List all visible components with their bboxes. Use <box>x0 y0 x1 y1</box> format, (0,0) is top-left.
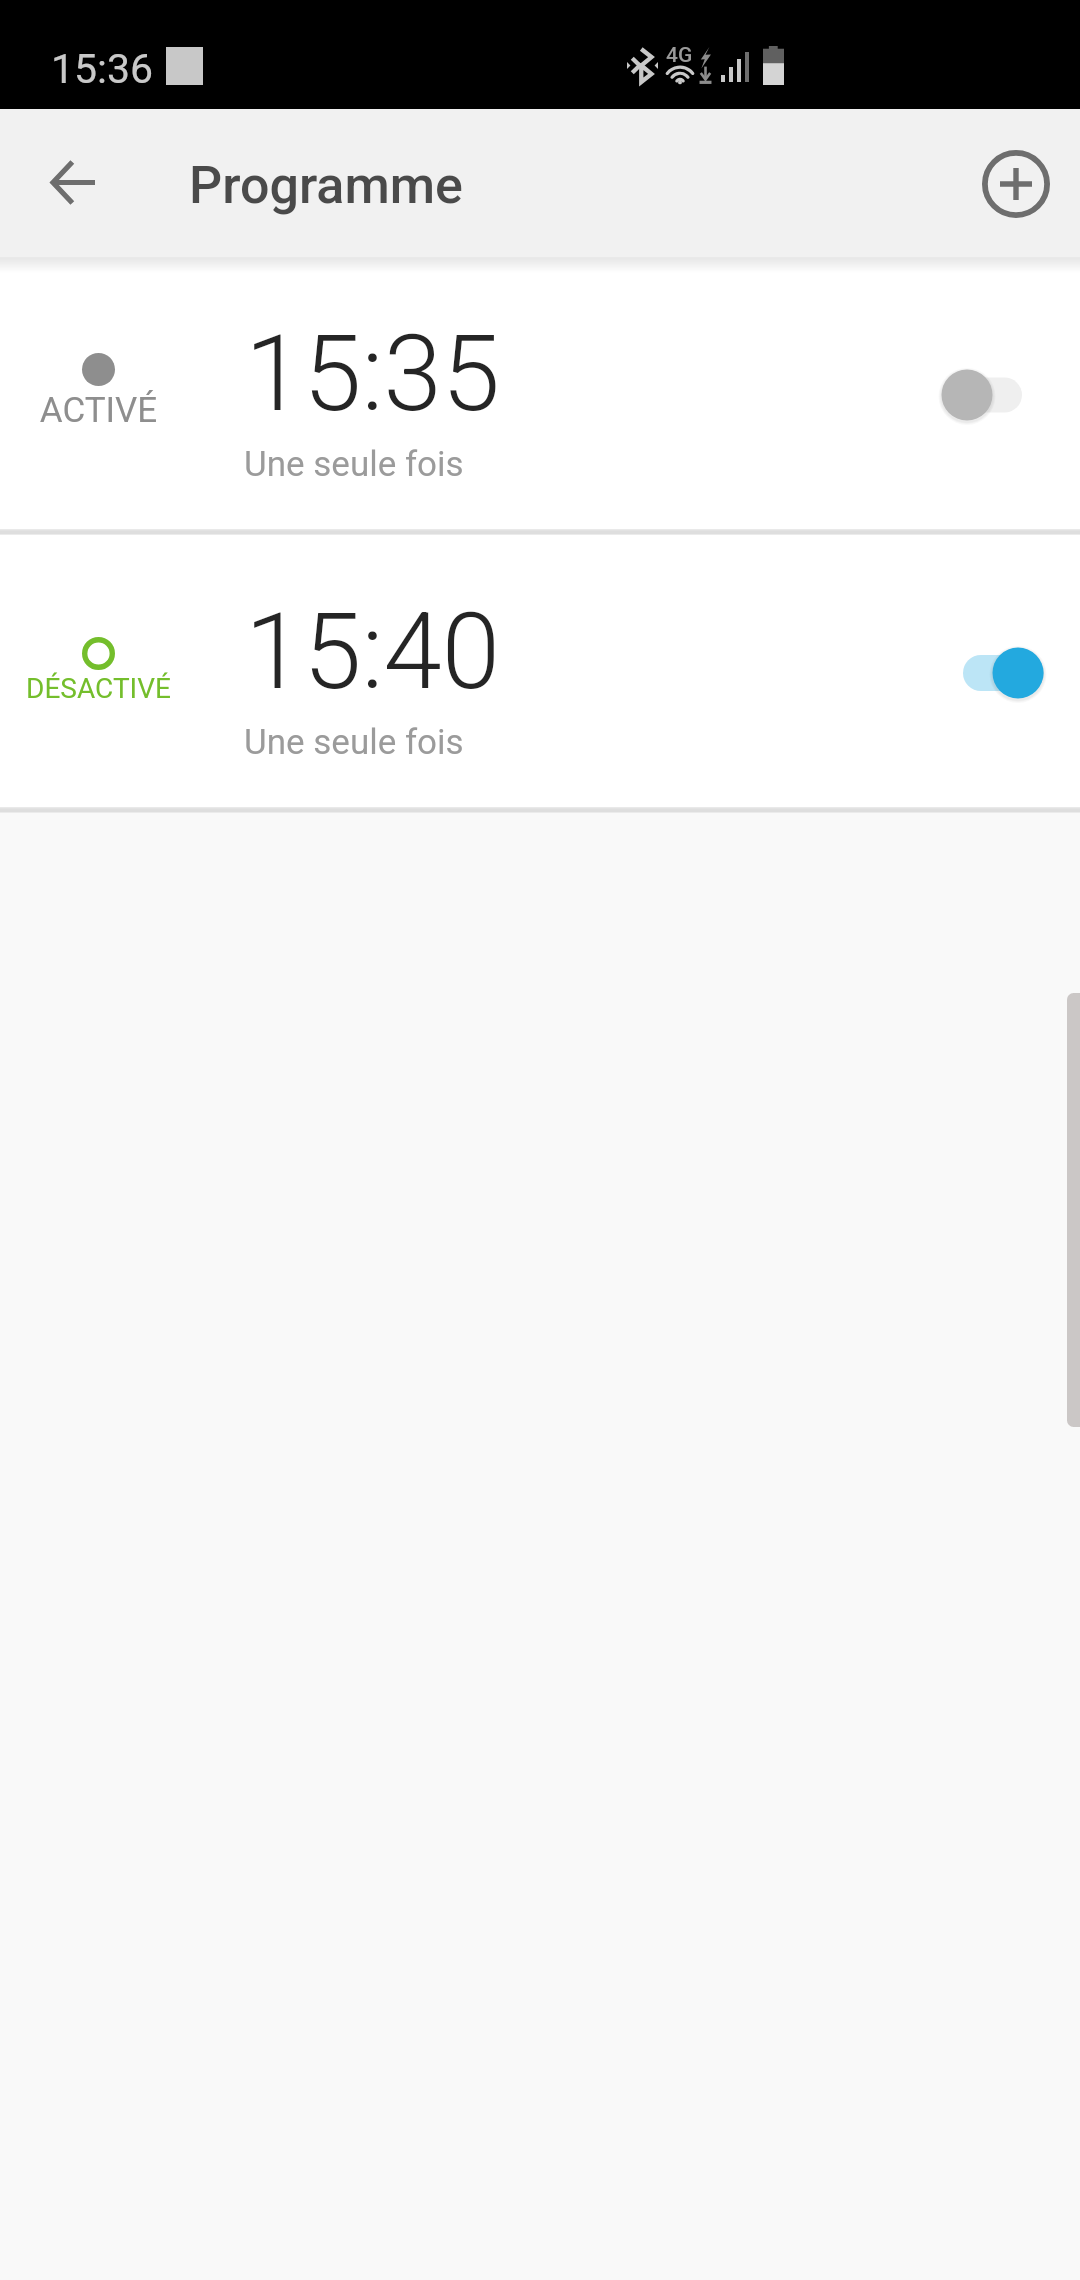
button[interactable]: Add alarm <box>968 136 1064 232</box>
staticText: ACTIVÉ <box>0 390 197 431</box>
staticText: DÉSACTIVÉ <box>0 672 197 705</box>
button[interactable]: Turn off alarm <box>930 613 1060 733</box>
button[interactable]: ACTIVÉ <box>0 257 1080 529</box>
staticText: Programme <box>189 155 463 216</box>
staticText: Une seule fois <box>244 444 464 485</box>
button[interactable]: Back <box>29 137 119 227</box>
staticText: 4G <box>666 43 693 68</box>
staticText: Une seule fois <box>244 722 464 763</box>
staticText: 15:35 <box>245 313 501 436</box>
staticText: 15:40 <box>245 591 501 714</box>
button[interactable]: Turn on alarm <box>930 335 1060 455</box>
button[interactable]: DÉSACTIVÉ <box>0 535 1080 807</box>
staticText: 15:36 <box>51 45 154 93</box>
